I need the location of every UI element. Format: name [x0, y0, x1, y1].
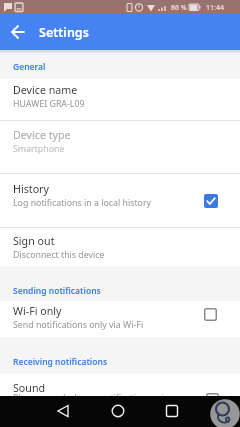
button[interactable] [95, 396, 141, 426]
staticText: HUAWEI GRA-L09 [13, 98, 85, 110]
button[interactable]: History [0, 174, 240, 227]
staticText: 86 % [171, 3, 187, 13]
button[interactable]: Sound [0, 375, 240, 397]
staticText: 11:44 [206, 3, 224, 13]
staticText: Device name [13, 83, 78, 98]
staticText: Sign out [13, 234, 55, 249]
staticText: Play a sound when a notification arrives [13, 392, 178, 404]
staticText: Send notifications only via Wi-Fi [13, 319, 144, 331]
staticText: Receiving notifications [13, 356, 108, 368]
staticText: Device type [13, 128, 71, 143]
staticText: Disconnect this device [13, 249, 105, 261]
button[interactable] [149, 396, 195, 426]
button[interactable]: Sign out [0, 228, 240, 264]
staticText: Sending notifications [13, 285, 101, 297]
button[interactable] [40, 396, 86, 426]
staticText: Log notifications in a local history [13, 197, 152, 209]
staticText: Smartphone [13, 143, 65, 155]
staticText: Settings [39, 24, 89, 41]
staticText: General [13, 61, 46, 73]
staticText: Sound [13, 381, 46, 396]
button[interactable] [10, 24, 26, 40]
button[interactable]: Device name [0, 80, 240, 120]
button[interactable]: Wi-Fi only [0, 302, 240, 336]
staticText: History [13, 182, 49, 197]
staticText: Wi-Fi only [13, 304, 62, 319]
